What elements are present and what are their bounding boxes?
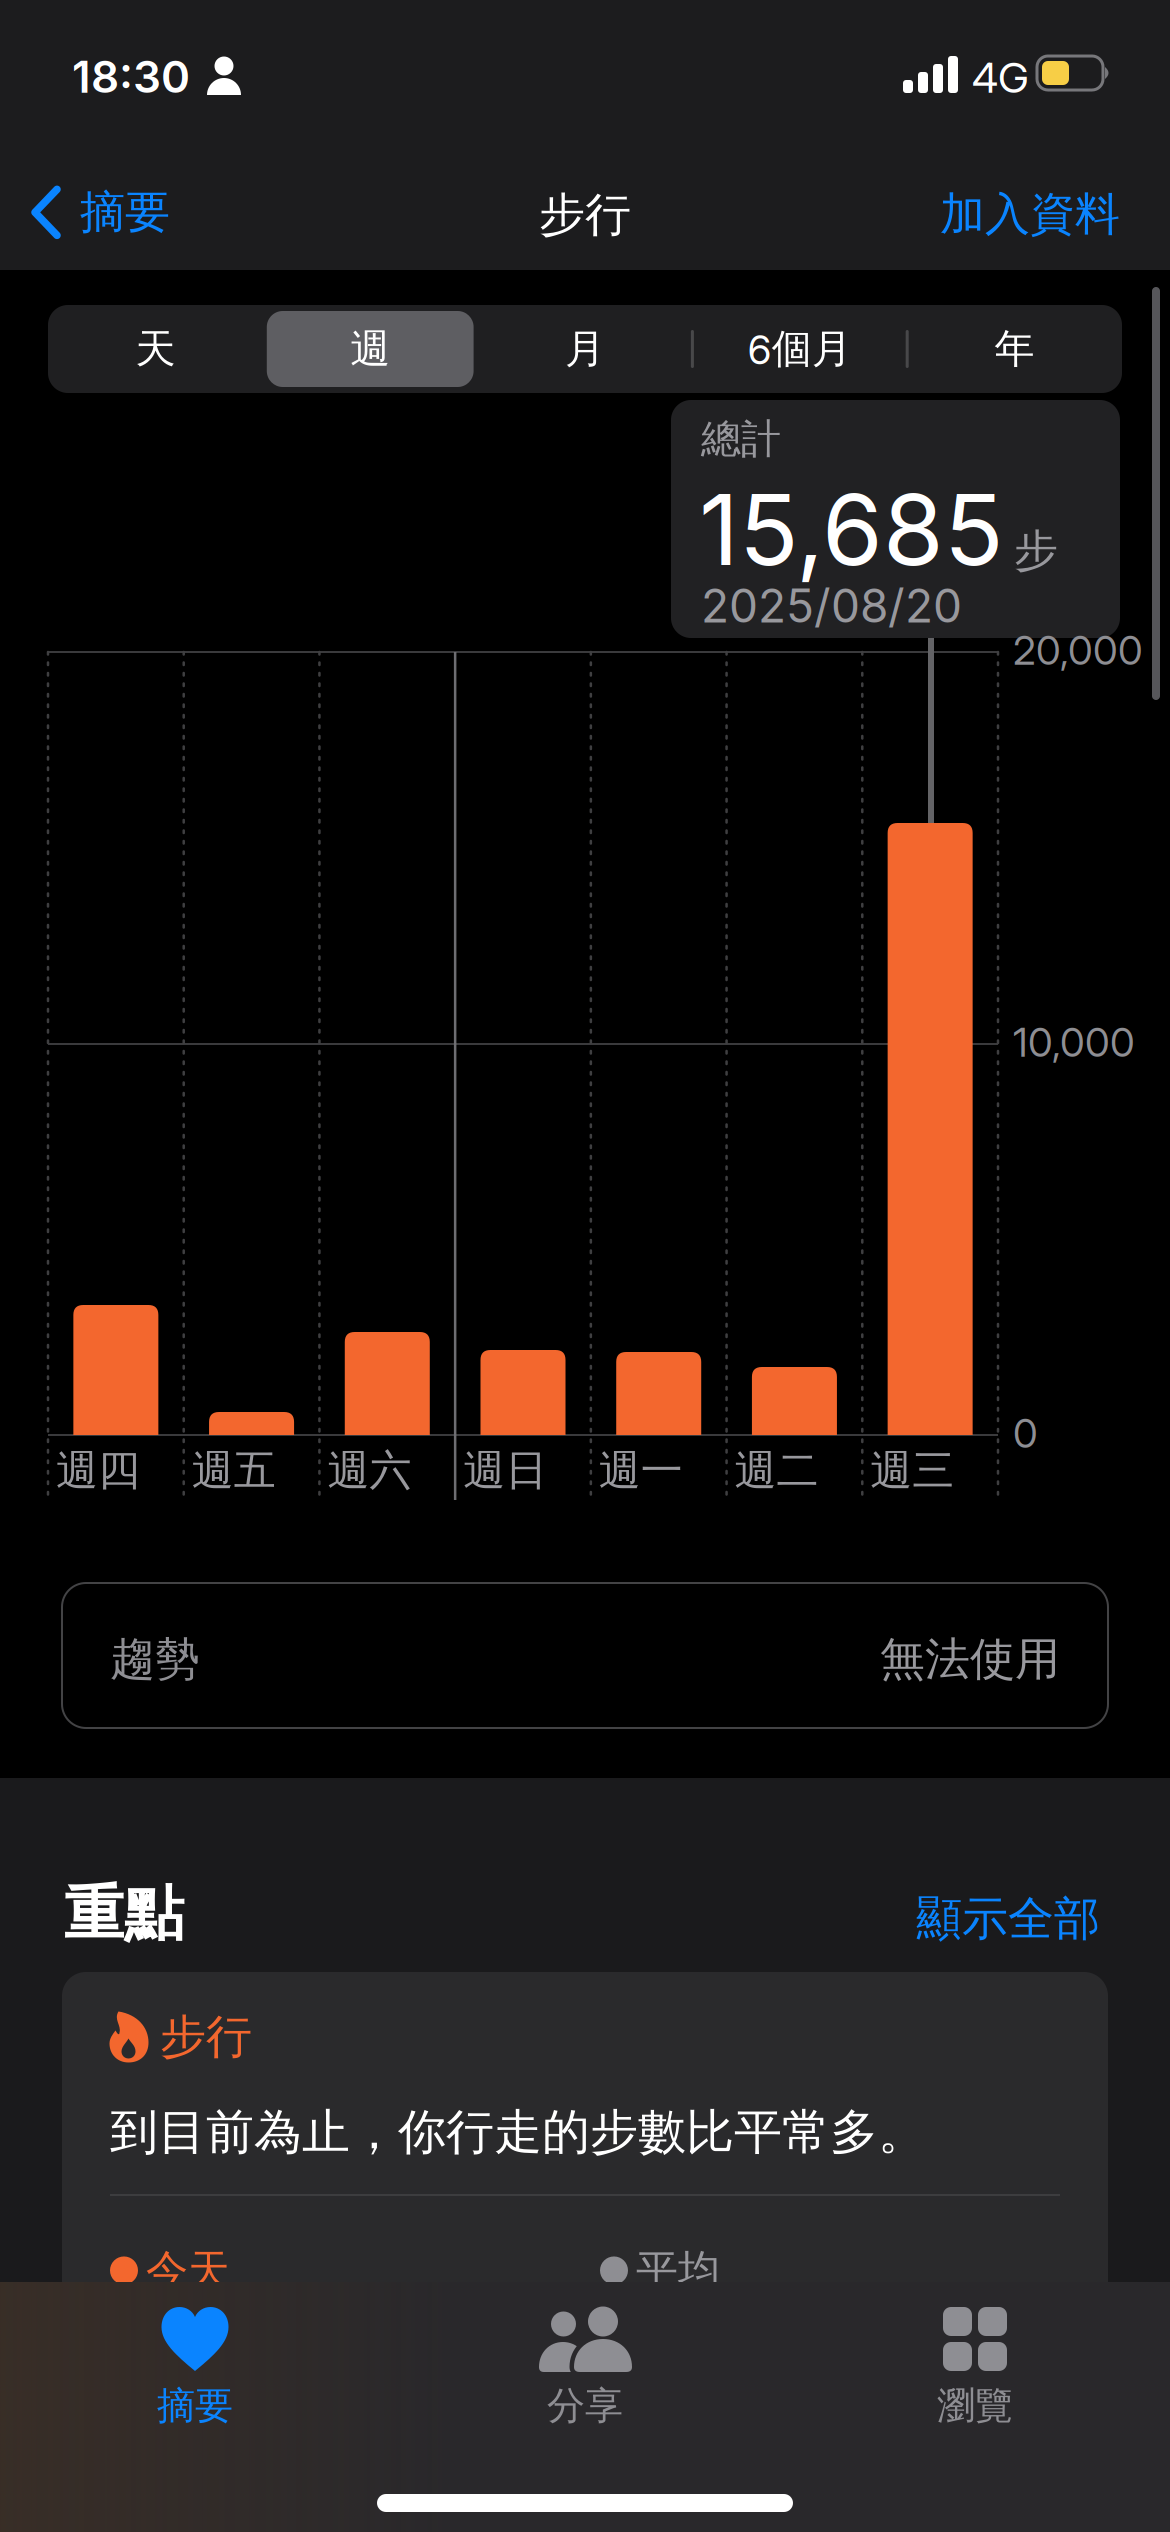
staticText: 平均 [636,2244,720,2297]
button[interactable]: 步行 [62,1972,1108,2312]
staticText: 週一 [599,1444,683,1497]
button[interactable]: 天 [48,305,263,393]
staticText: 15,685 [699,470,1004,589]
button[interactable]: 週 [263,305,478,393]
staticText: 到目前為止，你行走的步數比平常多。 [110,2102,926,2162]
staticText: 步行 [539,186,631,244]
button[interactable]: 返回摘要 [31,184,170,241]
staticText: 摘要 [80,184,170,241]
staticText: 分享 [547,2382,623,2430]
staticText: 月 [565,324,605,374]
staticText: 20,000 [1013,626,1143,674]
staticText: 週日 [463,1444,547,1497]
staticText: 天 [135,324,175,374]
staticText: 趨勢 [110,1631,200,1688]
staticText: 瀏覽 [937,2382,1013,2430]
staticText: 步 [1014,523,1058,578]
button[interactable]: 加入資料 [940,186,1120,243]
button[interactable]: 6個月 [692,305,907,393]
staticText: 0 [1013,1409,1038,1457]
staticText: 18:30 [72,50,190,103]
staticText: 無法使用 [880,1631,1060,1688]
staticText: 今天 [146,2244,230,2297]
staticText: 週三 [870,1444,954,1497]
button[interactable]: 瀏覽 [780,2282,1170,2462]
button[interactable]: 顯示全部 [916,1890,1100,1948]
staticText: 週四 [56,1444,140,1497]
staticText: 總計 [701,414,781,464]
staticText: 摘要 [157,2382,233,2430]
button[interactable]: 摘要 [0,2282,390,2462]
staticText: 週六 [327,1444,411,1497]
button[interactable]: 月 [478,305,692,393]
button[interactable]: 分享 [390,2282,780,2462]
staticText: 年 [995,324,1035,374]
staticText: 2025/08/20 [701,578,962,634]
staticText: 加入資料 [940,186,1120,243]
staticText: 10,000 [1013,1018,1135,1066]
staticText: 顯示全部 [916,1890,1100,1948]
staticText: 步行 [160,2008,252,2066]
staticText: 週二 [735,1444,819,1497]
staticText: 4G [972,52,1029,103]
staticText: 週 [350,324,390,374]
staticText: 6個月 [748,324,852,374]
button[interactable]: 年 [907,305,1122,393]
staticText: 週五 [192,1444,276,1497]
staticText: 重點 [64,1876,184,1952]
